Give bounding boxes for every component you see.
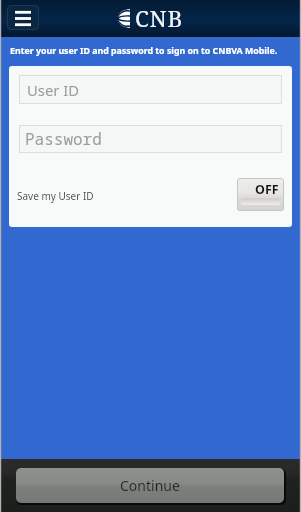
staticText: OFF [255,181,279,198]
button[interactable]: User ID [19,75,282,104]
staticText: Save my User ID [17,189,94,203]
button[interactable]: Menu [7,5,39,30]
button[interactable]: Save my User ID toggle, off [237,178,284,211]
staticText: Password [25,128,102,150]
staticText: CNB [135,3,184,34]
staticText: Enter your user ID and password to sign … [10,45,278,57]
button[interactable]: Password [19,125,282,153]
staticText: Continue [120,476,180,495]
button[interactable]: Continue [16,468,284,503]
staticText: User ID [27,80,80,100]
